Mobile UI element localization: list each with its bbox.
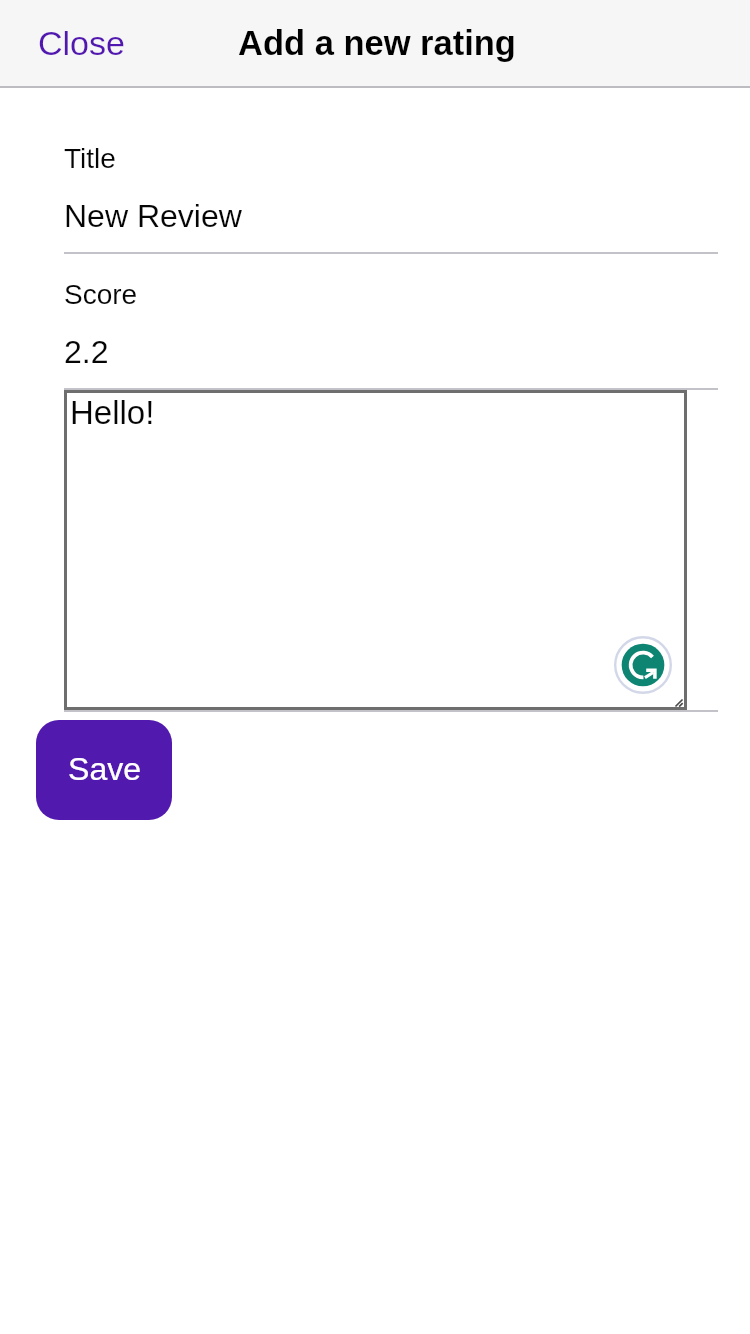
staticText: New Review: [64, 198, 242, 234]
staticText: Score: [64, 279, 138, 310]
button[interactable]: Grammarly: [614, 636, 672, 694]
button[interactable]: Close: [38, 24, 125, 62]
button[interactable]: Save: [36, 720, 172, 820]
staticText: Hello!: [70, 394, 155, 431]
staticText: Save: [68, 751, 141, 787]
button[interactable]: Hello!: [64, 390, 687, 710]
staticText: Close: [38, 24, 125, 62]
staticText: Add a new rating: [238, 24, 516, 63]
staticText: Title: [64, 143, 116, 174]
staticText: 2.2: [64, 334, 109, 370]
